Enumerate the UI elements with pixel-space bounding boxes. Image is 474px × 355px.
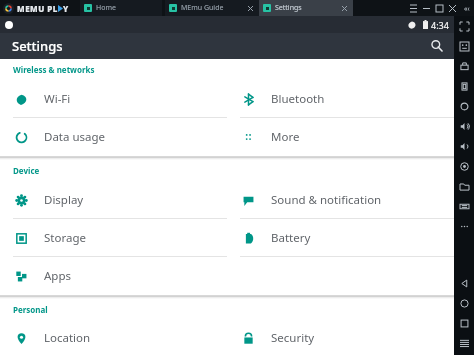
button[interactable]: Wi-Fi xyxy=(0,80,227,117)
button[interactable]: Close xyxy=(446,2,459,15)
button[interactable]: Menu xyxy=(407,2,420,15)
button[interactable]: Storage xyxy=(0,219,227,256)
staticText: Y xyxy=(63,3,69,14)
staticText: Settings xyxy=(12,37,63,55)
staticText: Security xyxy=(271,330,315,346)
button[interactable]: Location xyxy=(454,56,474,76)
staticText: MEmu Guide xyxy=(181,3,224,13)
staticText: Device xyxy=(13,165,40,176)
staticText: Storage xyxy=(44,230,86,246)
button[interactable]: Close tab xyxy=(245,3,255,13)
button[interactable]: Back xyxy=(454,273,474,293)
staticText: Home xyxy=(96,3,116,13)
button[interactable]: Menu xyxy=(454,333,474,353)
button[interactable]: Volume up xyxy=(454,116,474,136)
button[interactable]: Sync xyxy=(454,196,474,216)
button[interactable]: Shake xyxy=(454,76,474,96)
button[interactable]: Search xyxy=(426,35,448,57)
button[interactable]: More xyxy=(454,216,474,236)
button[interactable]: Shared folder xyxy=(454,176,474,196)
button[interactable]: More xyxy=(227,118,454,155)
button[interactable]: GPS xyxy=(454,156,474,176)
button[interactable]: Recents xyxy=(454,313,474,333)
staticText: Sound & notification xyxy=(271,192,382,208)
button[interactable]: Security xyxy=(227,320,454,355)
button[interactable]: Minimize xyxy=(420,2,433,15)
button[interactable]: Display xyxy=(0,181,227,218)
button[interactable]: Maximize xyxy=(433,2,446,15)
button[interactable]: Settings xyxy=(259,0,353,16)
button[interactable]: Keymap xyxy=(454,36,474,56)
button[interactable]: Collapse sidebar xyxy=(459,1,474,16)
button[interactable]: Bluetooth xyxy=(227,80,454,117)
button[interactable]: Home xyxy=(80,0,162,16)
button[interactable]: Sound & notification xyxy=(227,181,454,218)
staticText: Bluetooth xyxy=(271,91,325,107)
button[interactable]: Fullscreen xyxy=(454,16,474,36)
staticText: «‹ xyxy=(464,4,470,14)
button[interactable]: Battery xyxy=(227,219,454,256)
staticText: More xyxy=(271,129,300,145)
staticText: 4:34 xyxy=(431,19,449,31)
staticText: MEMU PL xyxy=(17,3,58,14)
staticText: Battery xyxy=(271,230,311,246)
button[interactable]: MEmu Guide xyxy=(165,0,259,16)
staticText: Personal xyxy=(13,304,48,315)
staticText: Data usage xyxy=(44,129,106,145)
button[interactable]: Apps xyxy=(0,257,227,294)
button[interactable]: Home xyxy=(454,293,474,313)
staticText: Location xyxy=(44,330,91,346)
button[interactable]: Data usage xyxy=(0,118,227,155)
staticText: Wireless & networks xyxy=(13,64,95,75)
button[interactable]: Close tab xyxy=(339,3,349,13)
button[interactable]: Location xyxy=(0,320,227,355)
staticText: Display xyxy=(44,192,84,208)
button[interactable]: Volume down xyxy=(454,136,474,156)
button[interactable]: Rotate xyxy=(454,96,474,116)
staticText: Wi-Fi xyxy=(44,91,71,107)
staticText: Apps xyxy=(44,268,72,284)
staticText: Settings xyxy=(275,3,302,13)
